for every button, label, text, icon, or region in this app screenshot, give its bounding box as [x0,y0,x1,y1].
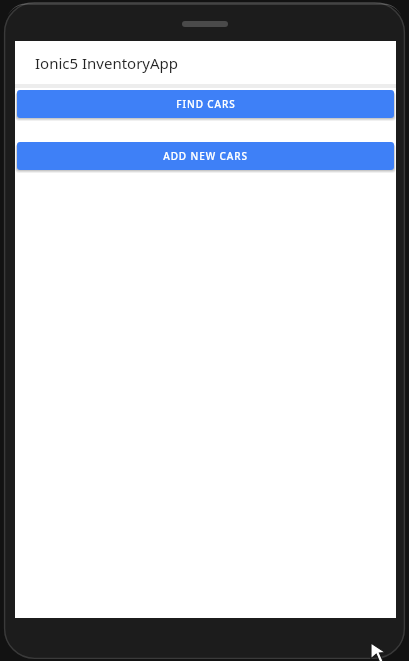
button[interactable]: FIND CARS [17,90,394,118]
button[interactable]: ADD NEW CARS [17,142,394,170]
staticText: Ionic5 InventoryApp [35,53,179,73]
staticText: ADD NEW CARS [163,149,248,163]
staticText: FIND CARS [176,97,236,111]
